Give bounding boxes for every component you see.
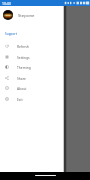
button[interactable]: Profile picture xyxy=(3,10,13,20)
staticText: Stepone xyxy=(18,12,35,18)
button[interactable]: About xyxy=(0,82,64,93)
button[interactable]: Stepone xyxy=(18,12,35,18)
button[interactable]: Exit xyxy=(0,93,64,104)
staticText: Theming xyxy=(17,65,31,69)
button[interactable]: Settings xyxy=(0,51,64,62)
staticText: 10:43 xyxy=(2,1,11,6)
staticText: Exit xyxy=(17,97,23,101)
button[interactable]: Refresh xyxy=(0,40,64,51)
staticText: Refresh xyxy=(17,44,29,48)
staticText: Share xyxy=(17,76,26,80)
button[interactable]: Theming xyxy=(0,61,64,72)
staticText: Settings xyxy=(17,55,30,59)
button[interactable]: Share xyxy=(0,72,64,83)
staticText: Support xyxy=(5,32,17,36)
staticText: About xyxy=(17,86,27,90)
